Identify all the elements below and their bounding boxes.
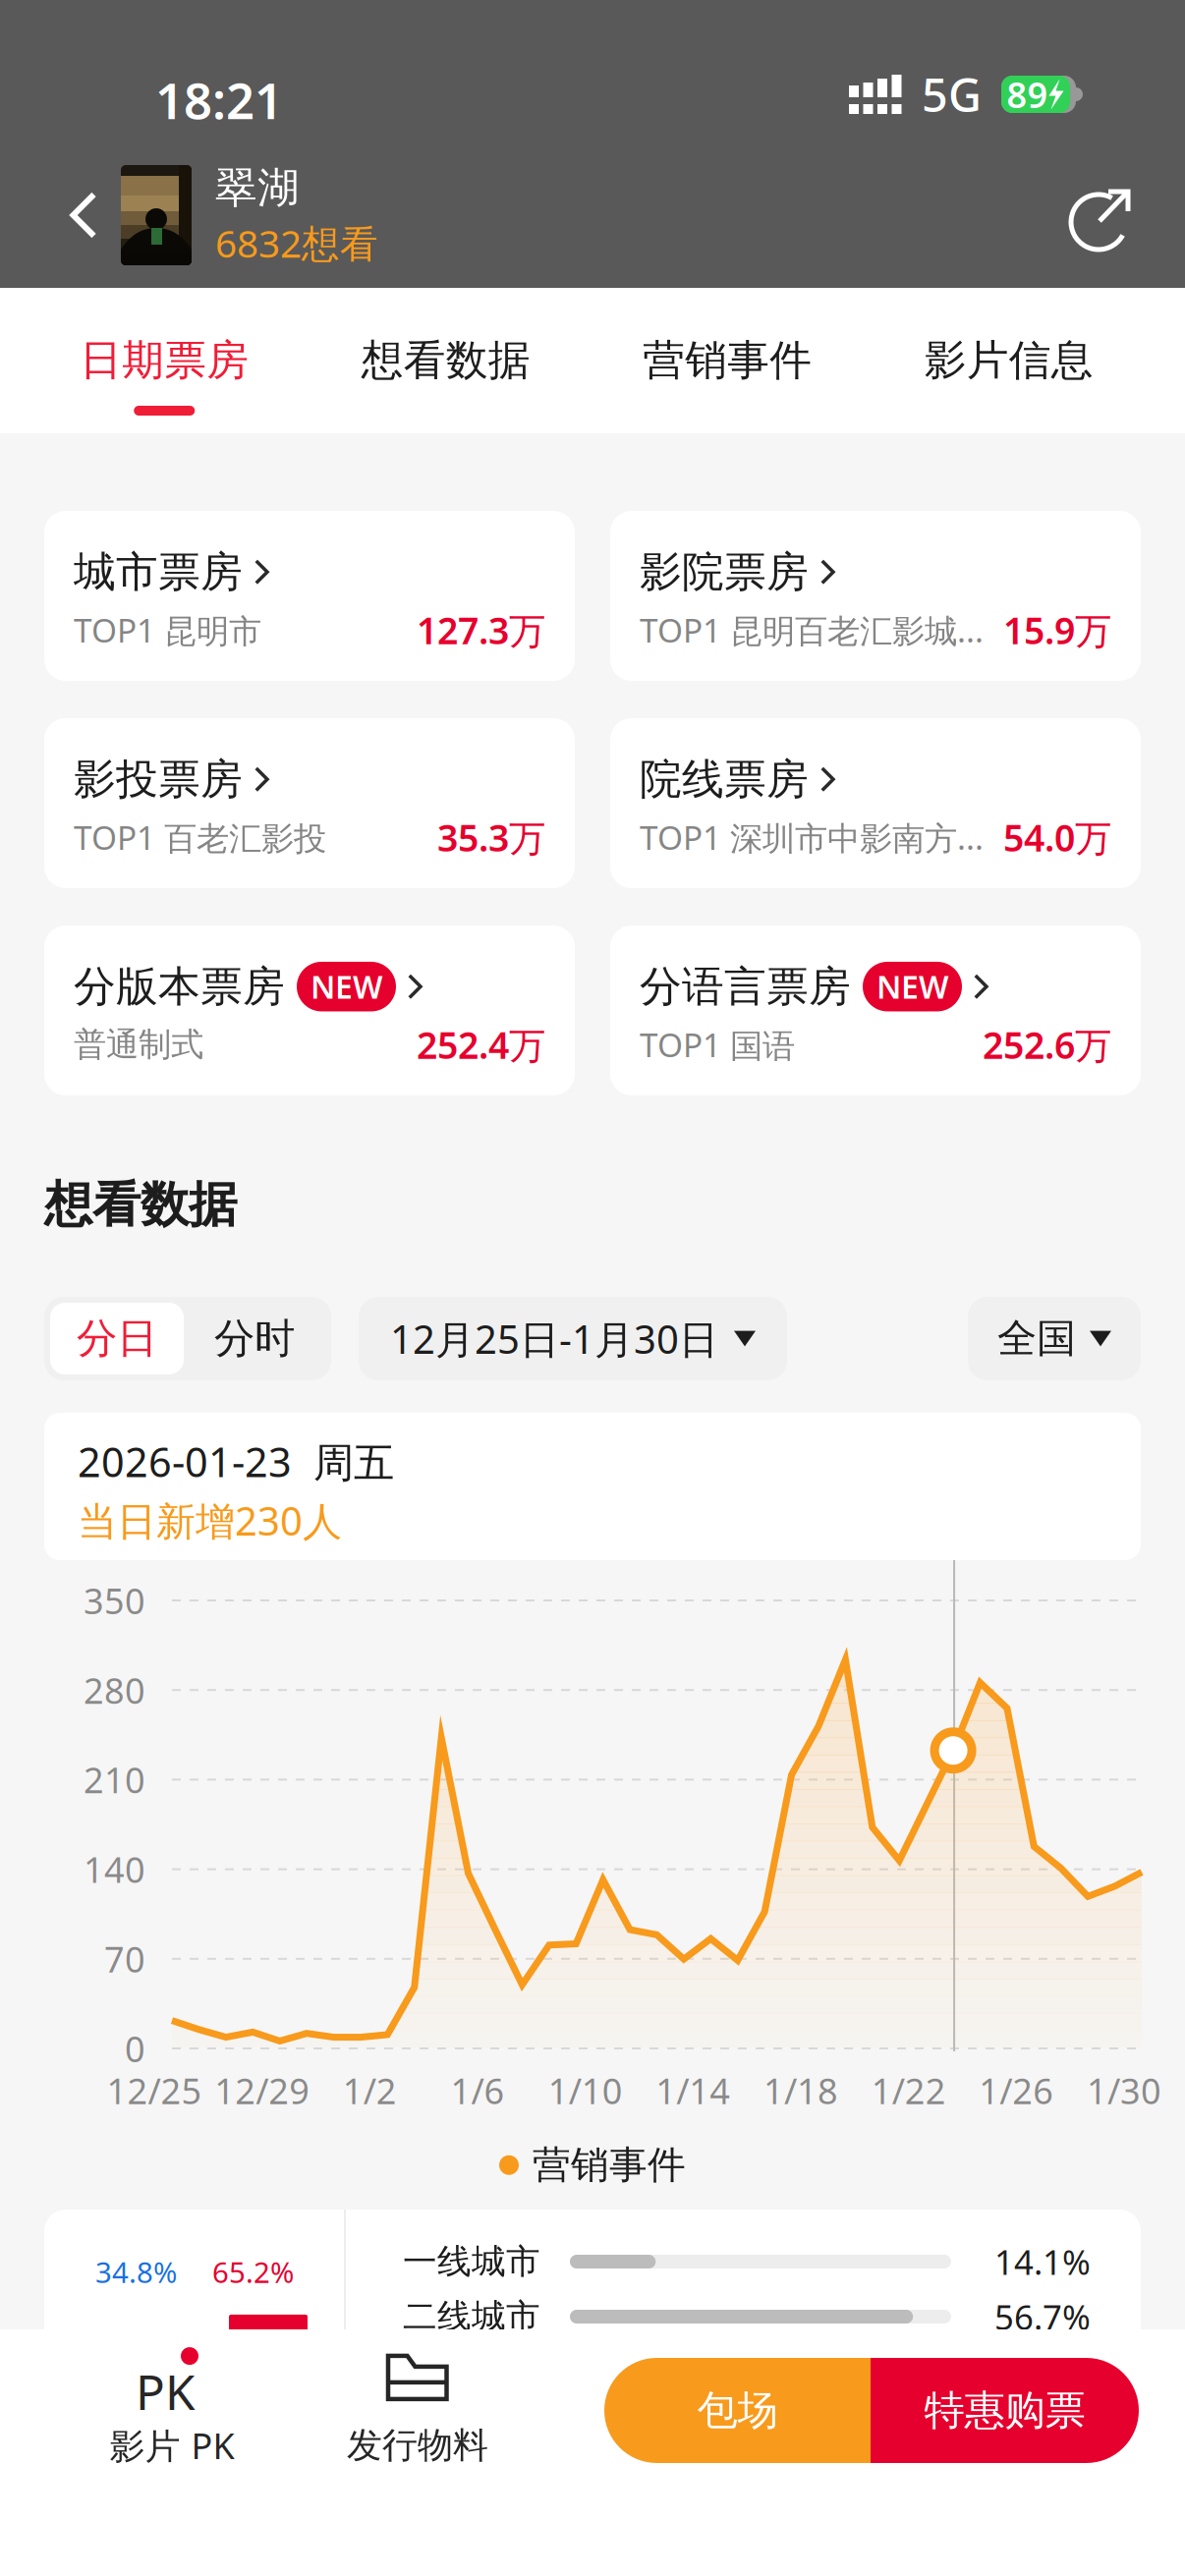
staticText: 营销事件 [643,335,812,386]
staticText: 89 [1007,71,1048,118]
staticText: 70 [104,1935,145,1982]
staticText: 城市票房 [74,546,243,598]
button[interactable]: 院线票房 [610,718,1141,888]
staticText: 5G [922,64,982,125]
button[interactable]: 城市票房 [44,511,575,681]
staticText: 280 [84,1667,145,1714]
staticText: 二线城市 [403,2296,540,2338]
button[interactable]: 全国 [968,1297,1141,1380]
staticText: 想看数据 [361,335,530,386]
staticText: TOP1 昆明市 [74,608,261,652]
button[interactable]: 影片信息 [868,288,1150,433]
button[interactable]: 日期票房 [24,288,305,433]
staticText: 影片信息 [924,335,1093,386]
staticText: 全国 [997,1314,1076,1363]
staticText: 1/6 [451,2067,505,2114]
staticText: 普通制式 [74,1024,203,1065]
button[interactable]: 影院票房 [610,511,1141,681]
staticText: 350 [84,1577,145,1624]
staticText: 54.0万 [1003,813,1111,862]
staticText: 18:21 [155,67,283,133]
staticText: 1/14 [656,2067,730,2114]
button[interactable]: 分日 [50,1303,184,1374]
staticText: 影片 PK [110,2422,234,2469]
staticText: 15.9万 [1003,606,1111,654]
staticText: TOP1 百老汇影投 [74,815,326,859]
staticText: 1/18 [763,2067,838,2114]
button[interactable]: 想看数据 [305,288,587,433]
button[interactable]: 包场 [604,2358,871,2463]
staticText: 14.1% [994,2239,1091,2284]
staticText: 34.8% [95,2253,177,2291]
staticText: PK [136,2359,196,2423]
staticText: 分时 [214,1314,295,1364]
staticText: TOP1 国语 [640,1023,795,1066]
staticText: 12月25日-1月30日 [390,1312,718,1365]
staticText: 院线票房 [640,754,809,805]
staticText: 140 [84,1846,145,1893]
button[interactable]: 发行物料 [0,2329,511,2461]
button[interactable]: 影投票房 [44,718,575,888]
button[interactable]: Share [1067,177,1136,253]
staticText: 127.3万 [417,606,545,654]
staticText: 特惠购票 [924,2386,1085,2435]
staticText: 影投票房 [74,754,243,805]
staticText: 影院票房 [640,546,809,598]
staticText: 日期票房 [80,335,249,386]
staticText: 营销事件 [533,2142,686,2188]
staticText: 包场 [697,2386,778,2435]
staticText: 一线城市 [403,2241,540,2283]
staticText: 1/26 [979,2067,1054,2114]
staticText: 2026-01-23 周五 [78,1434,394,1488]
staticText: 1/22 [871,2067,946,2114]
staticText: 252.4万 [417,1020,545,1069]
staticText: TOP1 昆明百老汇影城... [640,608,984,652]
button[interactable]: 特惠购票 [871,2358,1139,2463]
staticText: 分语言票房 [640,961,851,1012]
button[interactable]: 12月25日-1月30日 [359,1297,787,1380]
staticText: 35.3万 [437,813,545,862]
button[interactable]: PK [0,2329,265,2461]
staticText: 当日新增230人 [78,1494,342,1546]
staticText: 想看数据 [44,1175,237,1235]
staticText: 56.7% [994,2294,1091,2339]
staticText: NEW [876,966,948,1008]
staticText: 分日 [77,1314,157,1364]
staticText: 发行物料 [347,2424,488,2467]
button[interactable]: 分版本票房 [44,925,575,1095]
staticText: 12/25 [107,2067,202,2114]
staticText: 1/30 [1087,2067,1161,2114]
staticText: TOP1 深圳市中影南方... [640,815,984,859]
button[interactable]: Back [46,160,121,270]
button[interactable]: 分语言票房 [610,925,1141,1095]
staticText: 210 [84,1756,145,1803]
button[interactable]: 营销事件 [587,288,868,433]
staticText: 翠湖 [215,162,300,214]
staticText: 65.2% [212,2253,294,2291]
staticText: 0 [125,2025,145,2072]
staticText: 6832想看 [215,218,378,268]
staticText: 1/2 [343,2067,397,2114]
staticText: NEW [310,966,382,1008]
staticText: 分版本票房 [74,961,285,1012]
staticText: 1/10 [548,2067,623,2114]
staticText: 252.6万 [983,1020,1111,1069]
staticText: 12/29 [214,2067,310,2114]
button[interactable]: 分时 [184,1303,325,1374]
